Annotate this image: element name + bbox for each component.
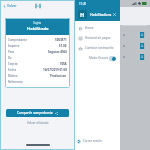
staticText: Volver al listado bbox=[27, 121, 49, 125]
staticText: 5003871 bbox=[55, 38, 67, 42]
staticText: Tarjeta bbox=[8, 62, 18, 66]
staticText: Para bbox=[8, 50, 15, 54]
staticText: 17:20 bbox=[79, 2, 87, 6]
button[interactable]: Home bbox=[75, 23, 120, 33]
staticText: De bbox=[8, 56, 12, 60]
staticText: Compartir comprobante bbox=[17, 111, 53, 115]
button[interactable] bbox=[120, 29, 150, 40]
button[interactable] bbox=[120, 40, 150, 51]
staticText: $1.00 bbox=[59, 44, 67, 48]
button[interactable]: Cambiar contraseña bbox=[75, 43, 120, 53]
button[interactable]: Cerrar bbox=[112, 11, 117, 17]
staticText: Modo Oscuro bbox=[89, 56, 109, 60]
button[interactable]: Volver bbox=[2, 3, 18, 9]
staticText: Habilitadora bbox=[90, 12, 112, 17]
staticText: Historial de pagos bbox=[85, 36, 111, 40]
staticText: Produccion bbox=[50, 74, 67, 78]
staticText: Fecha bbox=[8, 68, 17, 72]
staticText: 16/07/2019 01:58 bbox=[43, 68, 67, 72]
staticText: Cambiar contraseña bbox=[85, 46, 114, 50]
staticText: Tarjeta bbox=[33, 21, 42, 25]
staticText: Volver bbox=[7, 4, 17, 8]
staticText: Referencia bbox=[8, 80, 23, 84]
button[interactable]: Compartir comprobante bbox=[6, 109, 69, 117]
staticText: Seguros 4560 bbox=[48, 50, 67, 54]
button[interactable]: Cerrar sesión bbox=[75, 136, 120, 146]
staticText: H bbox=[80, 11, 85, 18]
button[interactable]: Historial de pagos bbox=[75, 33, 120, 43]
staticText: Cerrar sesión bbox=[83, 139, 102, 143]
staticText: Comprobante bbox=[8, 38, 28, 42]
button[interactable]: Volver al listado bbox=[26, 120, 50, 126]
staticText: Home bbox=[85, 26, 94, 30]
staticText: Importe bbox=[8, 44, 20, 48]
staticText: VISA bbox=[60, 62, 67, 66]
staticText: Habilitada bbox=[27, 26, 49, 32]
button[interactable]: Modo Oscuro bbox=[75, 53, 120, 63]
staticText: Motivo bbox=[8, 74, 18, 78]
button[interactable] bbox=[120, 51, 150, 62]
